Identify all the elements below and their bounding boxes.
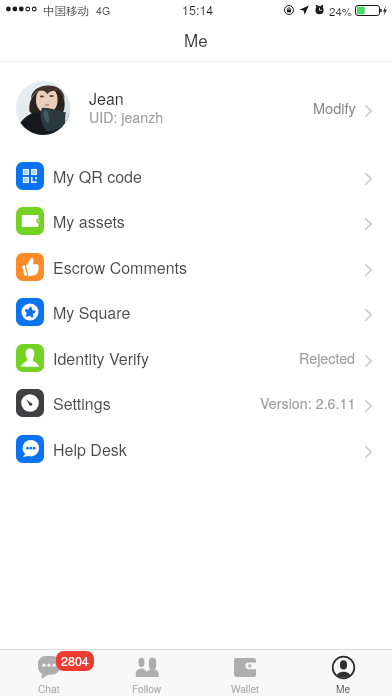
button[interactable]: Settings: [0, 380, 392, 426]
button[interactable]: Escrow Comments: [0, 244, 392, 290]
button[interactable]: My assets: [0, 198, 392, 244]
staticText: My QR code: [53, 165, 142, 188]
button[interactable]: Help Desk: [0, 426, 392, 472]
staticText: 中国移动: [43, 4, 89, 18]
staticText: 2804: [61, 652, 89, 670]
staticText: Jean: [89, 87, 124, 110]
button[interactable]: Chat: [0, 650, 98, 696]
button[interactable]: Follow: [98, 650, 196, 696]
staticText: Version: 2.6.11: [260, 393, 356, 413]
staticText: Rejected: [299, 348, 356, 368]
staticText: Help Desk: [53, 438, 127, 461]
button[interactable]: Me: [294, 650, 392, 696]
button[interactable]: Wallet: [196, 650, 294, 696]
button[interactable]: My Square: [0, 289, 392, 335]
staticText: My Square: [53, 301, 131, 324]
staticText: Escrow Comments: [53, 256, 188, 279]
staticText: 15:14: [182, 1, 214, 19]
button[interactable]: My QR code: [0, 153, 392, 199]
staticText: Wallet: [231, 681, 259, 696]
staticText: Me: [184, 27, 208, 51]
button[interactable]: Jean: [0, 62, 392, 153]
staticText: UID: jeanzh: [89, 107, 164, 127]
staticText: Identity Verify: [53, 347, 150, 370]
staticText: Me: [336, 681, 351, 696]
staticText: 4G: [96, 3, 111, 18]
staticText: Follow: [132, 681, 162, 696]
staticText: Chat: [38, 681, 60, 696]
staticText: My assets: [53, 210, 125, 233]
staticText: Settings: [53, 392, 111, 415]
button[interactable]: Identity Verify: [0, 335, 392, 381]
staticText: 24%: [329, 3, 353, 19]
staticText: Modify: [313, 97, 356, 118]
